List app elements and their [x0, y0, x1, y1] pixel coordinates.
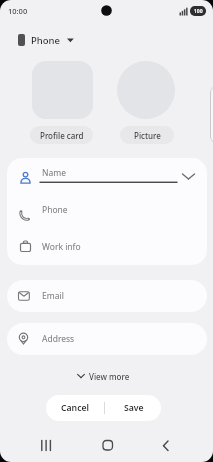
- staticText: Name: [42, 167, 66, 179]
- staticText: Picture: [134, 130, 161, 141]
- button[interactable]: Address: [7, 323, 207, 355]
- button[interactable]: Work info: [7, 230, 207, 265]
- staticText: Cancel: [61, 402, 90, 414]
- button[interactable]: Email: [7, 280, 207, 312]
- button[interactable]: Save: [105, 395, 161, 421]
- staticText: 10:00: [8, 6, 28, 16]
- button[interactable]: Phone: [12, 30, 84, 50]
- staticText: Phone: [31, 34, 60, 47]
- staticText: Work info: [42, 241, 81, 253]
- button[interactable]: [117, 61, 175, 119]
- button[interactable]: Profile card: [30, 126, 93, 144]
- staticText: 100: [194, 8, 203, 15]
- staticText: Email: [42, 290, 64, 302]
- button[interactable]: View more: [70, 369, 142, 384]
- button[interactable]: Phone: [7, 194, 207, 230]
- button[interactable]: Picture: [120, 126, 174, 144]
- staticText: View more: [89, 371, 130, 382]
- button[interactable]: [34, 436, 58, 456]
- button[interactable]: [95, 436, 119, 456]
- staticText: Profile card: [40, 130, 84, 141]
- staticText: Phone: [42, 204, 68, 216]
- staticText: Address: [42, 333, 75, 345]
- button[interactable]: Name: [7, 158, 207, 194]
- button[interactable]: [154, 436, 178, 456]
- staticText: Save: [124, 402, 144, 414]
- button[interactable]: Cancel: [46, 395, 104, 421]
